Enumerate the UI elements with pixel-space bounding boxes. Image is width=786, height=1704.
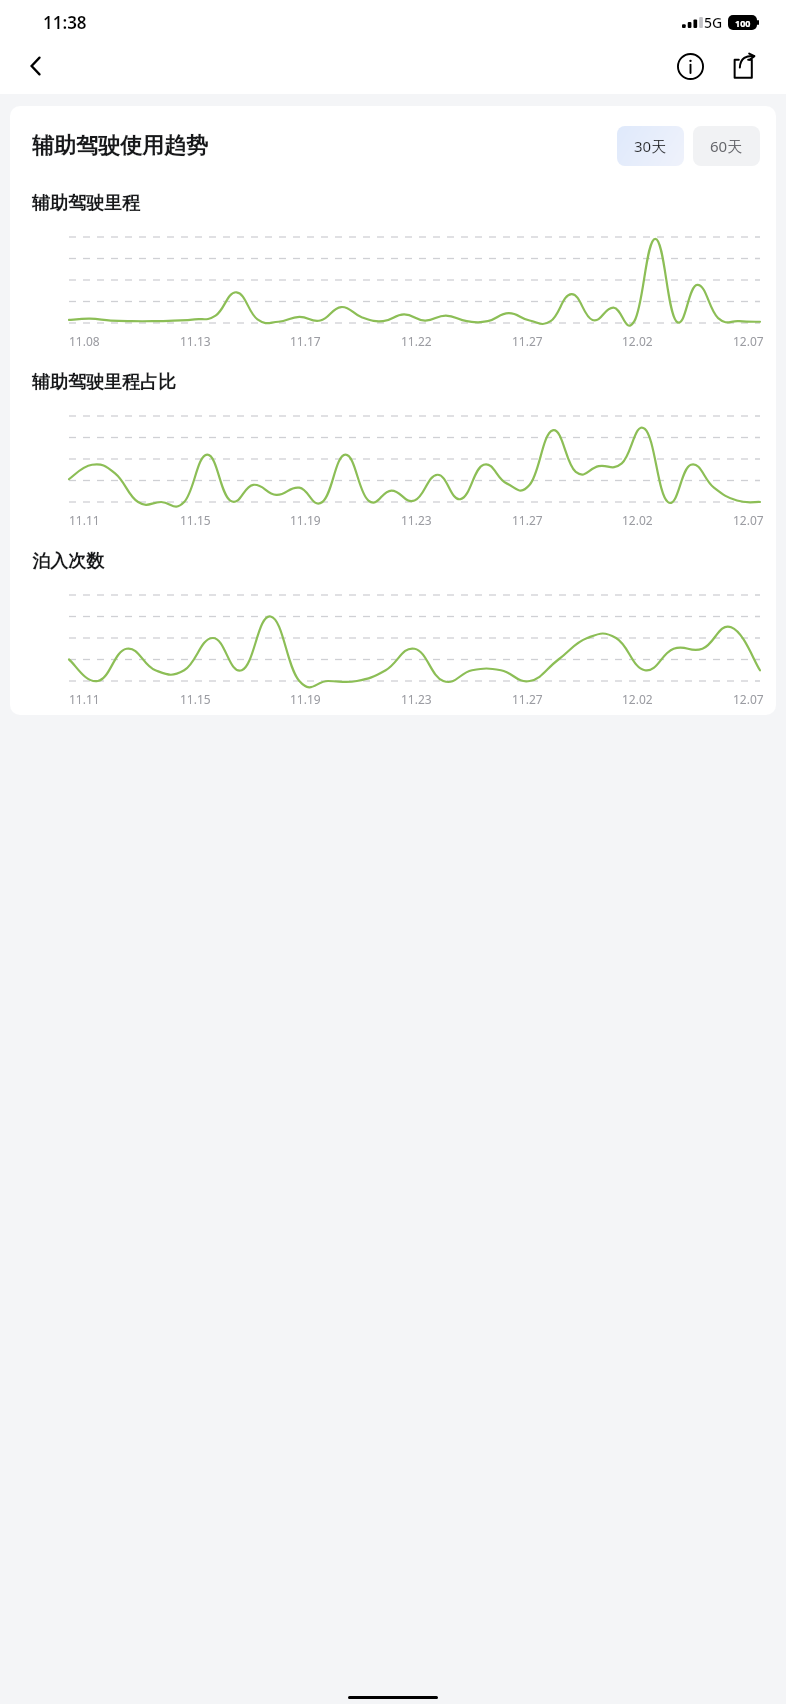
button[interactable]: Info: [668, 44, 712, 88]
button[interactable]: Back: [14, 44, 58, 88]
button[interactable]: 60天: [693, 126, 760, 166]
staticText: 30天: [634, 136, 667, 156]
staticText: 11.19: [290, 512, 321, 528]
button[interactable]: 30天: [617, 126, 684, 166]
staticText: 11.08: [69, 333, 100, 349]
staticText: 11.22: [401, 333, 432, 349]
staticText: 辅助驾驶使用趋势: [32, 132, 208, 160]
staticText: 11.23: [401, 512, 432, 528]
staticText: 11.19: [290, 691, 321, 707]
staticText: 11.23: [401, 691, 432, 707]
staticText: 11.27: [512, 333, 543, 349]
staticText: 100: [735, 17, 751, 29]
staticText: 11.11: [69, 512, 100, 528]
staticText: 11.15: [180, 512, 211, 528]
staticText: 12.02: [622, 333, 653, 349]
staticText: 12.02: [622, 691, 653, 707]
staticText: 11.17: [290, 333, 321, 349]
staticText: 5G: [704, 13, 723, 32]
staticText: 11.27: [512, 691, 543, 707]
staticText: 11.27: [512, 512, 543, 528]
staticText: 11.13: [180, 333, 211, 349]
button[interactable]: Share: [722, 44, 766, 88]
staticText: 11.15: [180, 691, 211, 707]
staticText: 12.07: [733, 512, 764, 528]
staticText: 12.07: [733, 691, 764, 707]
staticText: 60天: [710, 136, 743, 156]
staticText: 泊入次数: [32, 550, 104, 573]
staticText: 12.02: [622, 512, 653, 528]
staticText: 辅助驾驶里程占比: [32, 371, 176, 394]
staticText: 11:38: [43, 11, 87, 34]
staticText: 11.11: [69, 691, 100, 707]
staticText: 辅助驾驶里程: [32, 192, 140, 215]
staticText: 12.07: [733, 333, 764, 349]
